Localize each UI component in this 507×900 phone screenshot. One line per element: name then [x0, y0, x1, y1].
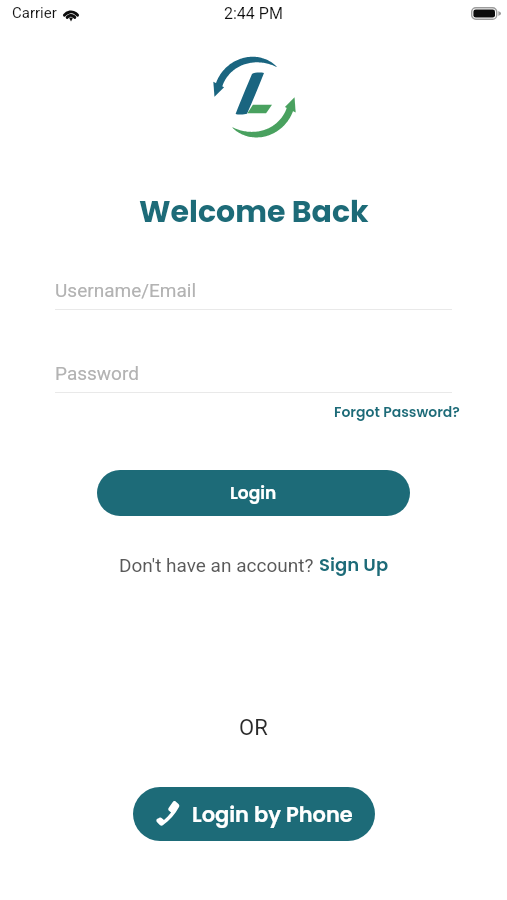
button[interactable]: Sign Up	[319, 552, 389, 577]
staticText: Sign Up	[319, 552, 389, 577]
other: Phone	[156, 802, 180, 826]
button[interactable]: Phone	[133, 787, 375, 841]
staticText: Don't have an account?	[119, 554, 319, 576]
staticText: 2:44 PM	[224, 4, 283, 23]
staticText: OR	[239, 715, 268, 741]
staticText: Password	[55, 362, 139, 384]
staticText: Login by Phone	[192, 800, 353, 829]
staticText: Username/Email	[55, 279, 197, 301]
staticText: Login	[230, 481, 277, 505]
staticText: Welcome Back	[139, 191, 369, 233]
staticText: Carrier	[12, 4, 57, 22]
button[interactable]: Login	[97, 470, 410, 516]
button[interactable]: Forgot Password?	[334, 402, 460, 422]
staticText: Forgot Password?	[334, 402, 460, 422]
